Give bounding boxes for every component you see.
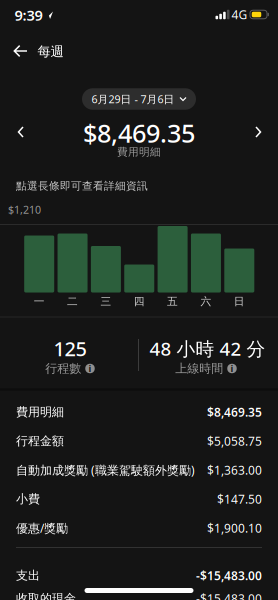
staticText: $147.50 xyxy=(217,491,262,507)
staticText: -$15,483.00 xyxy=(196,567,262,583)
staticText: 9:39 xyxy=(14,5,42,25)
staticText: $8,469.35 xyxy=(83,116,195,150)
staticText: 費用明細 xyxy=(16,405,64,419)
staticText: $1,363.00 xyxy=(207,462,262,478)
button[interactable]: 上一週 xyxy=(14,125,28,139)
staticText: 支出 xyxy=(16,568,40,583)
staticText: -$15,483.00 xyxy=(196,590,262,600)
staticText: 行程數 xyxy=(45,361,81,376)
staticText: $5,058.75 xyxy=(207,433,262,449)
staticText: 二 xyxy=(67,295,78,308)
staticText: 6月29日 - 7月6日 xyxy=(91,92,174,106)
button[interactable]: 查看詳細資訊 xyxy=(124,264,154,292)
staticText: 三 xyxy=(100,295,111,308)
button[interactable]: 返回 xyxy=(13,45,27,57)
staticText: 日 xyxy=(234,295,245,308)
staticText: 上線時間 xyxy=(175,361,223,376)
button[interactable]: 6月29日 - 7月6日 xyxy=(82,88,196,110)
staticText: $8,469.35 xyxy=(207,404,262,420)
staticText: 小費 xyxy=(16,492,40,506)
staticText: 一 xyxy=(34,295,45,308)
staticText: 收取的現金 xyxy=(16,591,76,600)
button[interactable]: 查看詳細資訊 xyxy=(224,248,254,292)
staticText: 125 xyxy=(53,335,86,362)
staticText: 行程金額 xyxy=(16,434,64,448)
staticText: 五 xyxy=(167,295,178,308)
staticText: $1,210 xyxy=(8,202,41,217)
button[interactable]: 查看詳細資訊 xyxy=(58,233,88,292)
staticText: 自動加成獎勵 (職業駕駛額外獎勵) xyxy=(16,462,195,478)
staticText: 4G xyxy=(231,6,247,22)
staticText: 48 小時 42 分 xyxy=(149,336,265,361)
staticText: 四 xyxy=(134,295,145,308)
staticText: 優惠/獎勵 xyxy=(16,520,68,536)
button[interactable]: 下一週 xyxy=(251,125,265,139)
staticText: 點選長條即可查看詳細資訊 xyxy=(16,179,148,192)
staticText: 每週 xyxy=(37,43,63,60)
staticText: 六 xyxy=(200,295,211,308)
staticText: 費用明細 xyxy=(117,145,161,158)
button[interactable]: 查看詳細資訊 xyxy=(158,226,188,292)
staticText: i xyxy=(230,362,233,375)
staticText: i xyxy=(88,362,91,375)
staticText: $1,900.10 xyxy=(207,520,262,536)
